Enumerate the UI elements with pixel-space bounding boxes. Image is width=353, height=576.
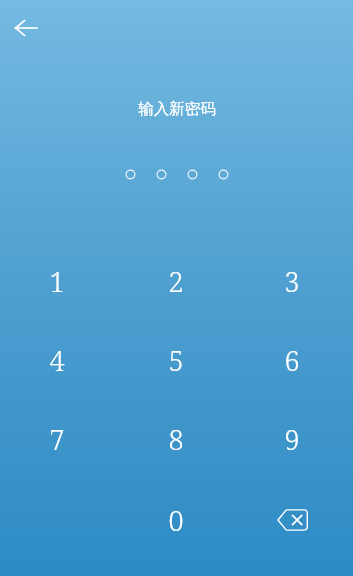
button[interactable]: Delete: [252, 486, 332, 554]
staticText: 2: [168, 263, 184, 300]
button[interactable]: 5: [128, 326, 224, 394]
staticText: 5: [168, 342, 184, 379]
staticText: 0: [168, 502, 184, 539]
button[interactable]: 1: [9, 247, 105, 315]
staticText: 1: [49, 263, 65, 300]
button[interactable]: 9: [244, 405, 340, 473]
button[interactable]: Back: [4, 6, 48, 50]
button[interactable]: 8: [128, 405, 224, 473]
button[interactable]: 0: [128, 486, 224, 554]
staticText: 3: [284, 263, 300, 300]
staticText: 7: [49, 421, 65, 458]
button[interactable]: 6: [244, 326, 340, 394]
staticText: 8: [168, 421, 184, 458]
staticText: 输入新密码: [138, 99, 216, 119]
staticText: 6: [284, 342, 300, 379]
button[interactable]: 4: [9, 326, 105, 394]
button[interactable]: 2: [128, 247, 224, 315]
button[interactable]: 7: [9, 405, 105, 473]
staticText: 9: [284, 421, 300, 458]
staticText: 4: [49, 342, 65, 379]
button[interactable]: 3: [244, 247, 340, 315]
